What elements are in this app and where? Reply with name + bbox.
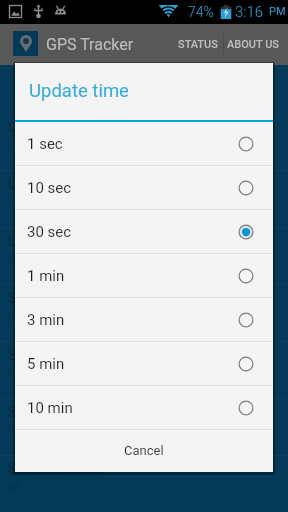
staticText: PM <box>269 5 286 18</box>
button[interactable]: 5 min <box>15 342 273 385</box>
staticText: Update time <box>8 118 90 136</box>
staticText: 15 sec <box>8 138 41 151</box>
button[interactable]: 1 sec <box>15 122 273 165</box>
staticText: no limit <box>8 195 45 208</box>
staticText: 10 min <box>27 399 73 417</box>
staticText: GPS Tracker <box>46 35 134 54</box>
staticText: gps.example.com <box>8 309 96 322</box>
staticText: GPS + Network <box>8 252 82 265</box>
button[interactable]: STATUS <box>172 24 223 65</box>
button[interactable]: ABOUT US <box>224 24 282 65</box>
staticText: Start on boot <box>8 346 96 364</box>
button[interactable]: Share location <box>0 456 288 512</box>
staticText: Share location <box>8 460 104 478</box>
staticText: 5 min <box>27 355 65 373</box>
staticText: 30 sec <box>27 223 72 241</box>
button[interactable]: Server address <box>0 285 288 341</box>
button[interactable]: App icon <box>13 31 38 56</box>
button[interactable]: 10 sec <box>15 166 273 209</box>
staticText: Server address <box>8 289 108 307</box>
staticText: 10 sec <box>27 179 72 197</box>
staticText: 1 sec <box>27 135 63 153</box>
button[interactable]: Cancel <box>15 430 273 471</box>
staticText: 1 min <box>27 267 65 285</box>
staticText: 3 min <box>27 311 65 329</box>
button[interactable]: Location source <box>0 228 288 284</box>
staticText: off <box>8 480 22 493</box>
staticText: Update distance <box>8 175 117 193</box>
button[interactable]: Stop tracking <box>0 399 288 455</box>
staticText: 74% <box>188 4 214 20</box>
button[interactable]: 1 min <box>15 254 273 297</box>
button[interactable]: Update time <box>0 114 288 170</box>
button[interactable]: 30 sec <box>15 210 273 253</box>
staticText: Location source <box>8 232 116 250</box>
staticText: Stop tracking <box>8 403 97 421</box>
staticText: ABOUT US <box>227 38 279 51</box>
staticText: 3:16 <box>235 3 264 21</box>
staticText: enabled <box>8 366 47 379</box>
button[interactable]: 10 min <box>15 386 273 429</box>
button[interactable]: 3 min <box>15 298 273 341</box>
staticText: STATUS <box>178 38 218 51</box>
staticText: tap to stop <box>8 423 61 436</box>
staticText: Update time <box>29 80 129 102</box>
button[interactable]: Update distance <box>0 171 288 227</box>
button[interactable]: Start on boot <box>0 342 288 398</box>
staticText: Cancel <box>124 443 164 458</box>
